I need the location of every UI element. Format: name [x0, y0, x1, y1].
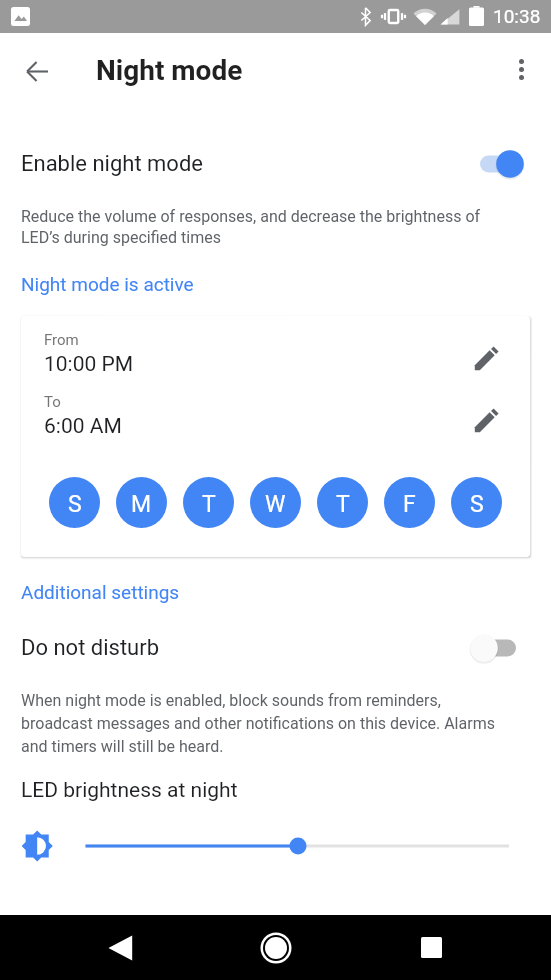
button[interactable]: Home [252, 915, 300, 980]
button[interactable]: Additional settings [21, 581, 180, 603]
button[interactable]: W [250, 477, 301, 528]
button[interactable]: Recent apps [407, 915, 455, 980]
button[interactable]: Edit To time [464, 399, 508, 443]
staticText: Do not disturb [21, 635, 160, 661]
staticText: To [44, 393, 61, 411]
staticText: 6:00 AM [44, 414, 122, 439]
staticText: Reduce the volume of responses, and decr… [21, 207, 481, 247]
staticText: 10:38 [493, 5, 541, 27]
staticText: S [68, 491, 82, 518]
button[interactable]: Off [474, 630, 530, 666]
staticText: LED brightness at night [21, 778, 238, 803]
button[interactable]: M [116, 477, 167, 528]
button[interactable]: Night mode is active [21, 273, 194, 295]
staticText: S [470, 491, 484, 518]
button[interactable]: T [317, 477, 368, 528]
staticText: M [131, 491, 152, 518]
button[interactable]: More options [499, 47, 544, 92]
button[interactable]: T [183, 477, 234, 528]
staticText: From [44, 331, 79, 349]
button[interactable]: Do not disturb [0, 620, 551, 676]
button[interactable]: Edit From time [464, 337, 508, 381]
staticText: Enable night mode [21, 151, 203, 177]
staticText: 10:00 PM [44, 352, 134, 377]
staticText: T [336, 491, 350, 518]
button[interactable]: LED brightness slider [0, 822, 551, 870]
staticText: T [202, 491, 216, 518]
button[interactable]: S [49, 477, 100, 528]
staticText: F [403, 491, 416, 518]
button[interactable]: Navigate up [18, 52, 56, 90]
button[interactable]: Enable night mode [0, 136, 551, 192]
staticText: Night mode [96, 54, 243, 87]
button[interactable]: F [384, 477, 435, 528]
button[interactable]: Back [97, 915, 145, 980]
button[interactable]: S [451, 477, 502, 528]
staticText: W [265, 491, 286, 518]
staticText: When night mode is enabled, block sounds… [21, 691, 495, 756]
button[interactable]: On [474, 146, 530, 182]
